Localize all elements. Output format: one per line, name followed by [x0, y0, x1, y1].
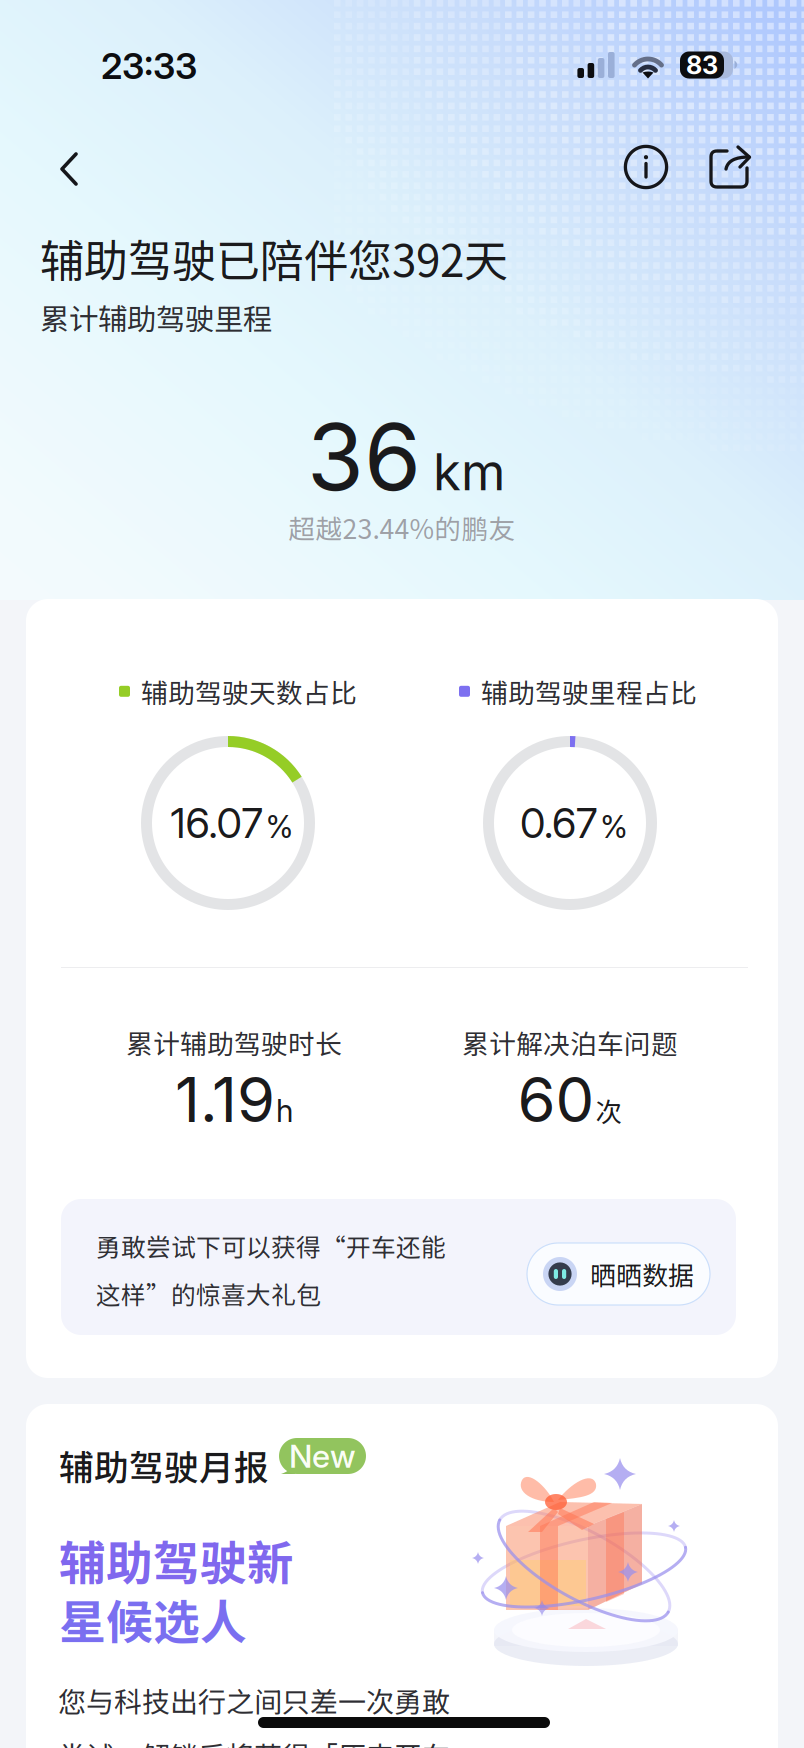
staticText: 您与科技出行之间只差一次勇敢 尝试，解锁后将获得「原来开车: [58, 1680, 450, 1748]
staticText: 0.67: [520, 798, 597, 848]
button[interactable]: 晒晒数据: [527, 1243, 710, 1305]
staticText: 1.19: [175, 1063, 275, 1137]
button[interactable]: Information: [613, 134, 679, 200]
button[interactable]: Back: [32, 131, 108, 207]
staticText: 累计解决泊车问题: [462, 1023, 678, 1062]
staticText: 星候选人: [59, 1585, 247, 1653]
staticText: 辅助驾驶新: [59, 1526, 294, 1594]
staticText: 36: [307, 401, 421, 512]
staticText: 次: [595, 1091, 622, 1130]
staticText: 60: [517, 1063, 594, 1137]
staticText: 16.07: [170, 798, 262, 848]
staticText: %: [600, 808, 628, 845]
staticText: 辅助驾驶里程占比: [481, 672, 697, 711]
staticText: h: [276, 1092, 293, 1129]
staticText: 晒晒数据: [590, 1255, 694, 1293]
staticText: 83: [686, 50, 718, 80]
staticText: 辅助驾驶月报: [59, 1440, 269, 1490]
staticText: km: [433, 441, 505, 502]
staticText: 辅助驾驶天数占比: [141, 672, 357, 711]
staticText: 勇敢尝试下可以获得“开车还能 这样”的惊喜大礼包: [96, 1228, 446, 1311]
staticText: 超越23.44%的鹏友: [288, 508, 515, 547]
staticText: 累计辅助驾驶时长: [126, 1023, 342, 1062]
staticText: %: [265, 808, 293, 845]
staticText: 辅助驾驶已陪伴您392天: [40, 226, 508, 290]
staticText: New: [289, 1437, 356, 1475]
button[interactable]: Share: [697, 135, 763, 201]
staticText: 累计辅助驾驶里程: [40, 296, 272, 338]
staticText: 23:33: [101, 44, 197, 88]
